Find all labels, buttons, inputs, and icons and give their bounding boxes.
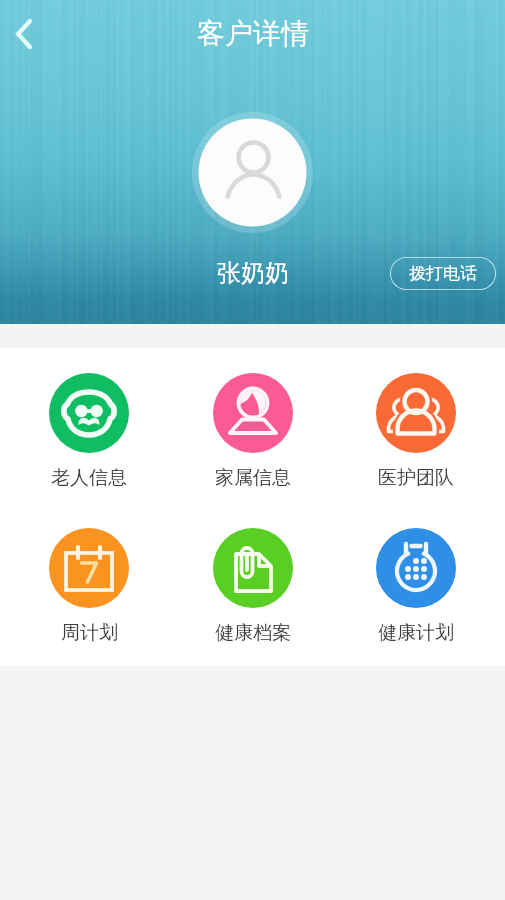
button[interactable]: 周计划	[0, 503, 178, 658]
button[interactable]: 医护团队	[327, 348, 505, 503]
staticText: 拨打电话	[409, 263, 477, 284]
staticText: 健康档案	[215, 621, 291, 645]
button[interactable]: 家属信息	[178, 348, 327, 503]
staticText: 老人信息	[51, 466, 127, 490]
staticText: 健康计划	[378, 621, 454, 645]
button[interactable]: Back	[2, 12, 46, 56]
button[interactable]: 拨打电话	[390, 257, 496, 290]
button[interactable]: 健康计划	[327, 503, 505, 658]
button[interactable]: 健康档案	[178, 503, 327, 658]
staticText: 医护团队	[378, 466, 454, 490]
button[interactable]: 老人信息	[0, 348, 178, 503]
staticText: 张奶奶	[217, 258, 289, 288]
staticText: 客户详情	[197, 16, 309, 51]
staticText: 家属信息	[215, 466, 291, 490]
staticText: 周计划	[61, 621, 118, 645]
